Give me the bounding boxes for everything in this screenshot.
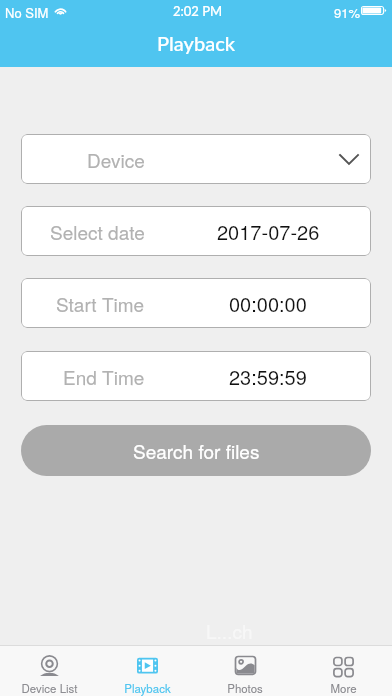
staticText: Search for files	[133, 437, 260, 464]
staticText: End Time	[63, 363, 145, 390]
staticText: Select date	[50, 218, 145, 245]
button[interactable]: Photos	[196, 645, 294, 696]
staticText: Photos	[227, 680, 263, 696]
staticText: 2017-07-26	[217, 217, 320, 246]
staticText: More	[330, 680, 357, 696]
staticText: Device	[87, 146, 145, 173]
other: Choose device	[339, 154, 359, 165]
button[interactable]: Device List	[0, 645, 98, 696]
button[interactable]: Search for files	[21, 425, 371, 476]
staticText: Playback	[124, 680, 171, 696]
staticText: Playback	[157, 31, 236, 55]
button[interactable]: More	[294, 645, 392, 696]
staticText: No SIM	[5, 3, 49, 22]
button[interactable]: Start Time	[21, 278, 371, 328]
staticText: Device List	[21, 680, 78, 696]
button[interactable]: Device	[21, 134, 371, 184]
button[interactable]: Select date	[21, 206, 371, 256]
other: Battery 91 percent	[361, 6, 387, 15]
staticText: 00:00:00	[229, 289, 307, 318]
staticText: 23:59:59	[229, 362, 307, 391]
other: Wi-Fi	[54, 5, 67, 16]
button[interactable]: End Time	[21, 351, 371, 401]
staticText: 2:02 PM	[173, 3, 223, 19]
staticText: Start Time	[56, 290, 145, 317]
staticText: 91%	[334, 3, 361, 22]
button[interactable]: Playback	[98, 645, 196, 696]
